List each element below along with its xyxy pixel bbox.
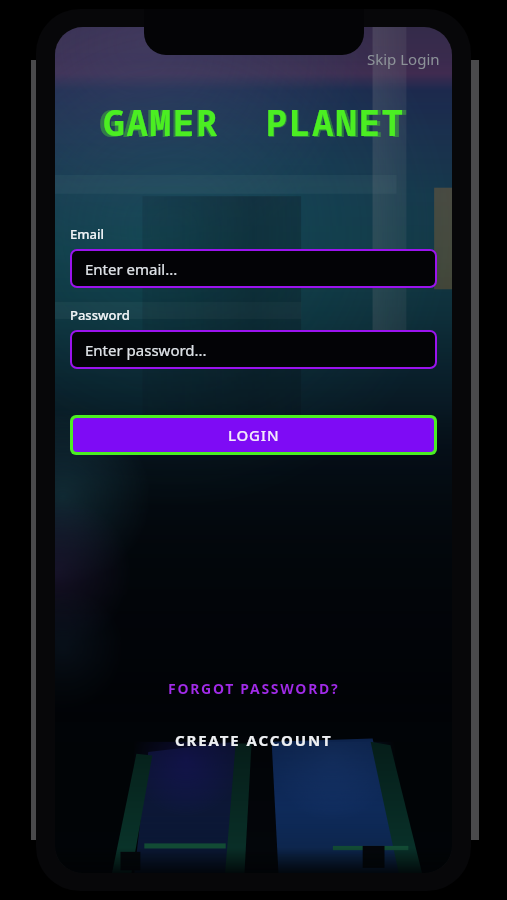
- staticText: LOGIN: [228, 425, 280, 445]
- staticText: CREATE ACCOUNT: [175, 730, 333, 750]
- staticText: Skip Login: [367, 49, 440, 69]
- button[interactable]: CREATE ACCOUNT: [163, 725, 345, 755]
- button[interactable]: Enter email...: [70, 249, 437, 288]
- staticText: Enter password...: [85, 340, 207, 360]
- staticText: Enter email...: [85, 259, 178, 279]
- button[interactable]: Skip Login: [361, 47, 446, 71]
- button[interactable]: FORGOT PASSWORD?: [156, 674, 352, 703]
- staticText: FORGOT PASSWORD?: [168, 679, 340, 698]
- staticText: Password: [70, 306, 130, 324]
- staticText: GAMER PLANET: [103, 98, 405, 147]
- staticText: Email: [70, 225, 105, 243]
- button[interactable]: Enter password...: [70, 330, 437, 369]
- button[interactable]: LOGIN: [70, 415, 437, 455]
- staticText: GAMER PLANET: [99, 97, 409, 147]
